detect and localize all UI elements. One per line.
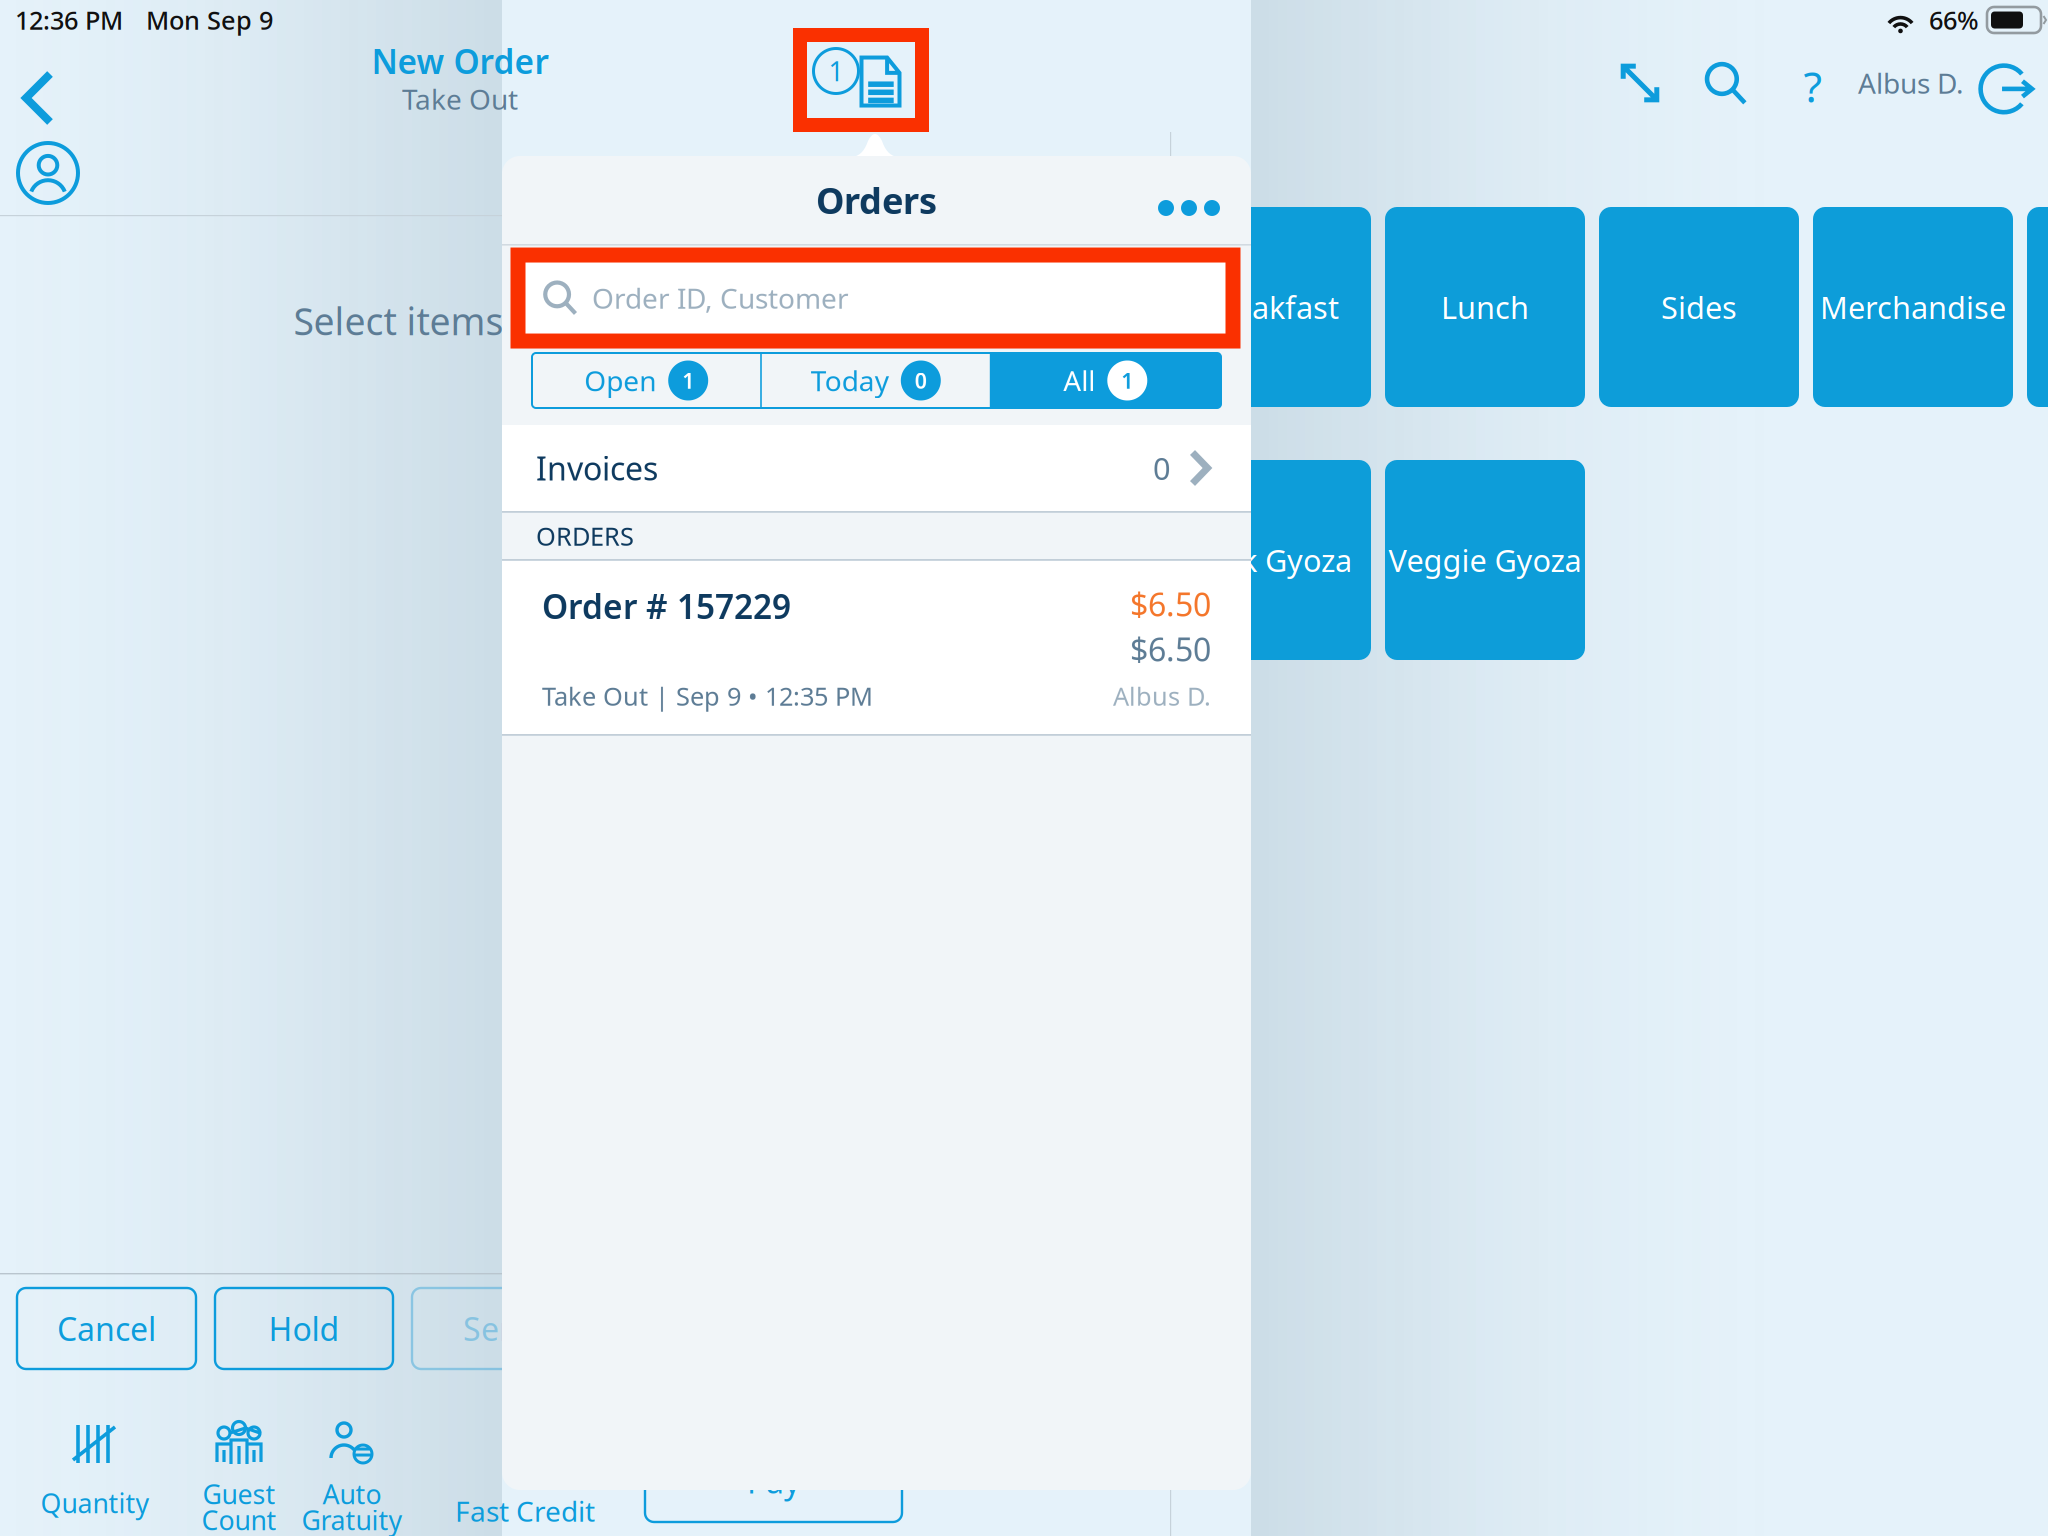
- staticText: Lunch: [1441, 287, 1529, 327]
- staticText: Auto: [322, 1476, 381, 1512]
- button[interactable]: Fast Credit: [425, 1487, 625, 1535]
- button[interactable]: Veggie Gyoza: [1385, 460, 1585, 660]
- button[interactable]: Orders: [800, 35, 922, 125]
- button[interactable]: Today: [762, 353, 990, 408]
- staticText: 0: [1153, 448, 1171, 488]
- button[interactable]: Open: [532, 353, 760, 408]
- button[interactable]: Cancel: [17, 1288, 196, 1369]
- staticText: Fast Credit: [455, 1492, 595, 1530]
- button[interactable]: All: [990, 353, 1221, 408]
- button[interactable]: Expand: [1605, 48, 1675, 118]
- staticText: 12:36 PM: [15, 3, 123, 37]
- staticText: Select items to add: [293, 296, 626, 346]
- staticText: Merchandise: [1820, 287, 2006, 327]
- button[interactable]: Pay: [645, 1440, 902, 1522]
- button[interactable]: More options: [1142, 172, 1236, 244]
- staticText: ORDERS: [536, 519, 634, 553]
- button[interactable]: Auto: [288, 1422, 416, 1536]
- button[interactable]: Guest: [183, 1422, 295, 1536]
- staticText: Order # 157229: [542, 584, 791, 628]
- staticText: Invoices: [536, 447, 658, 489]
- staticText: ?: [1803, 58, 1822, 114]
- staticText: Albus D.: [1858, 64, 1964, 102]
- staticText: $6.50: [1130, 628, 1211, 670]
- button[interactable]: Breakfast: [1171, 207, 1371, 407]
- staticText: 1: [682, 366, 694, 395]
- button[interactable]: Merchandise: [1813, 207, 2013, 407]
- staticText: Take Out | Sep 9 • 12:35 PM: [542, 679, 873, 713]
- staticText: Pay: [747, 1460, 800, 1502]
- button[interactable]: Search: [1689, 47, 1762, 120]
- staticText: Gratuity: [301, 1502, 402, 1536]
- staticText: Guest: [202, 1476, 275, 1512]
- staticText: Order ID, Customer: [592, 279, 849, 317]
- staticText: 66%: [1929, 3, 1979, 37]
- button[interactable]: Customer: [2, 129, 94, 217]
- button[interactable]: Sides: [1599, 207, 1799, 407]
- staticText: Hold: [268, 1307, 339, 1350]
- button[interactable]: Back: [4, 50, 72, 146]
- button[interactable]: Invoices: [502, 425, 1251, 511]
- staticText: Quantity: [40, 1485, 149, 1521]
- staticText: Veggie Gyoza: [1388, 540, 1581, 580]
- staticText: Count: [201, 1502, 276, 1536]
- button[interactable]: Albus D.: [1856, 55, 1966, 111]
- staticText: Orders: [816, 176, 937, 224]
- staticText: 0: [915, 366, 927, 395]
- button[interactable]: Log out: [1969, 54, 2042, 127]
- staticText: Send: [463, 1307, 539, 1350]
- button[interactable]: Lunch: [1385, 207, 1585, 407]
- staticText: Take Out: [402, 80, 518, 118]
- button[interactable]: Drinks: [2027, 207, 2048, 407]
- staticText: New Order: [371, 39, 548, 83]
- button[interactable]: Quantity: [0, 1422, 190, 1536]
- staticText: All: [1063, 362, 1095, 399]
- staticText: Sides: [1661, 287, 1737, 327]
- staticText: 1: [1121, 366, 1133, 395]
- button[interactable]: Pork Gyoza: [1171, 460, 1371, 660]
- staticText: Today: [811, 362, 889, 399]
- button[interactable]: Order # 157229: [502, 561, 1251, 734]
- staticText: Albus D.: [1113, 679, 1211, 713]
- staticText: $6.50: [1130, 583, 1211, 625]
- staticText: 1: [828, 53, 843, 89]
- staticText: Open: [584, 362, 656, 399]
- staticText: Cancel: [57, 1307, 156, 1350]
- staticText: Pork Gyoza: [1190, 540, 1352, 580]
- staticText: Mon Sep 9: [146, 3, 273, 37]
- button[interactable]: Help: [1782, 46, 1844, 126]
- button[interactable]: Hold: [215, 1288, 393, 1369]
- button[interactable]: Send: [412, 1288, 590, 1369]
- staticText: Breakfast: [1203, 287, 1339, 327]
